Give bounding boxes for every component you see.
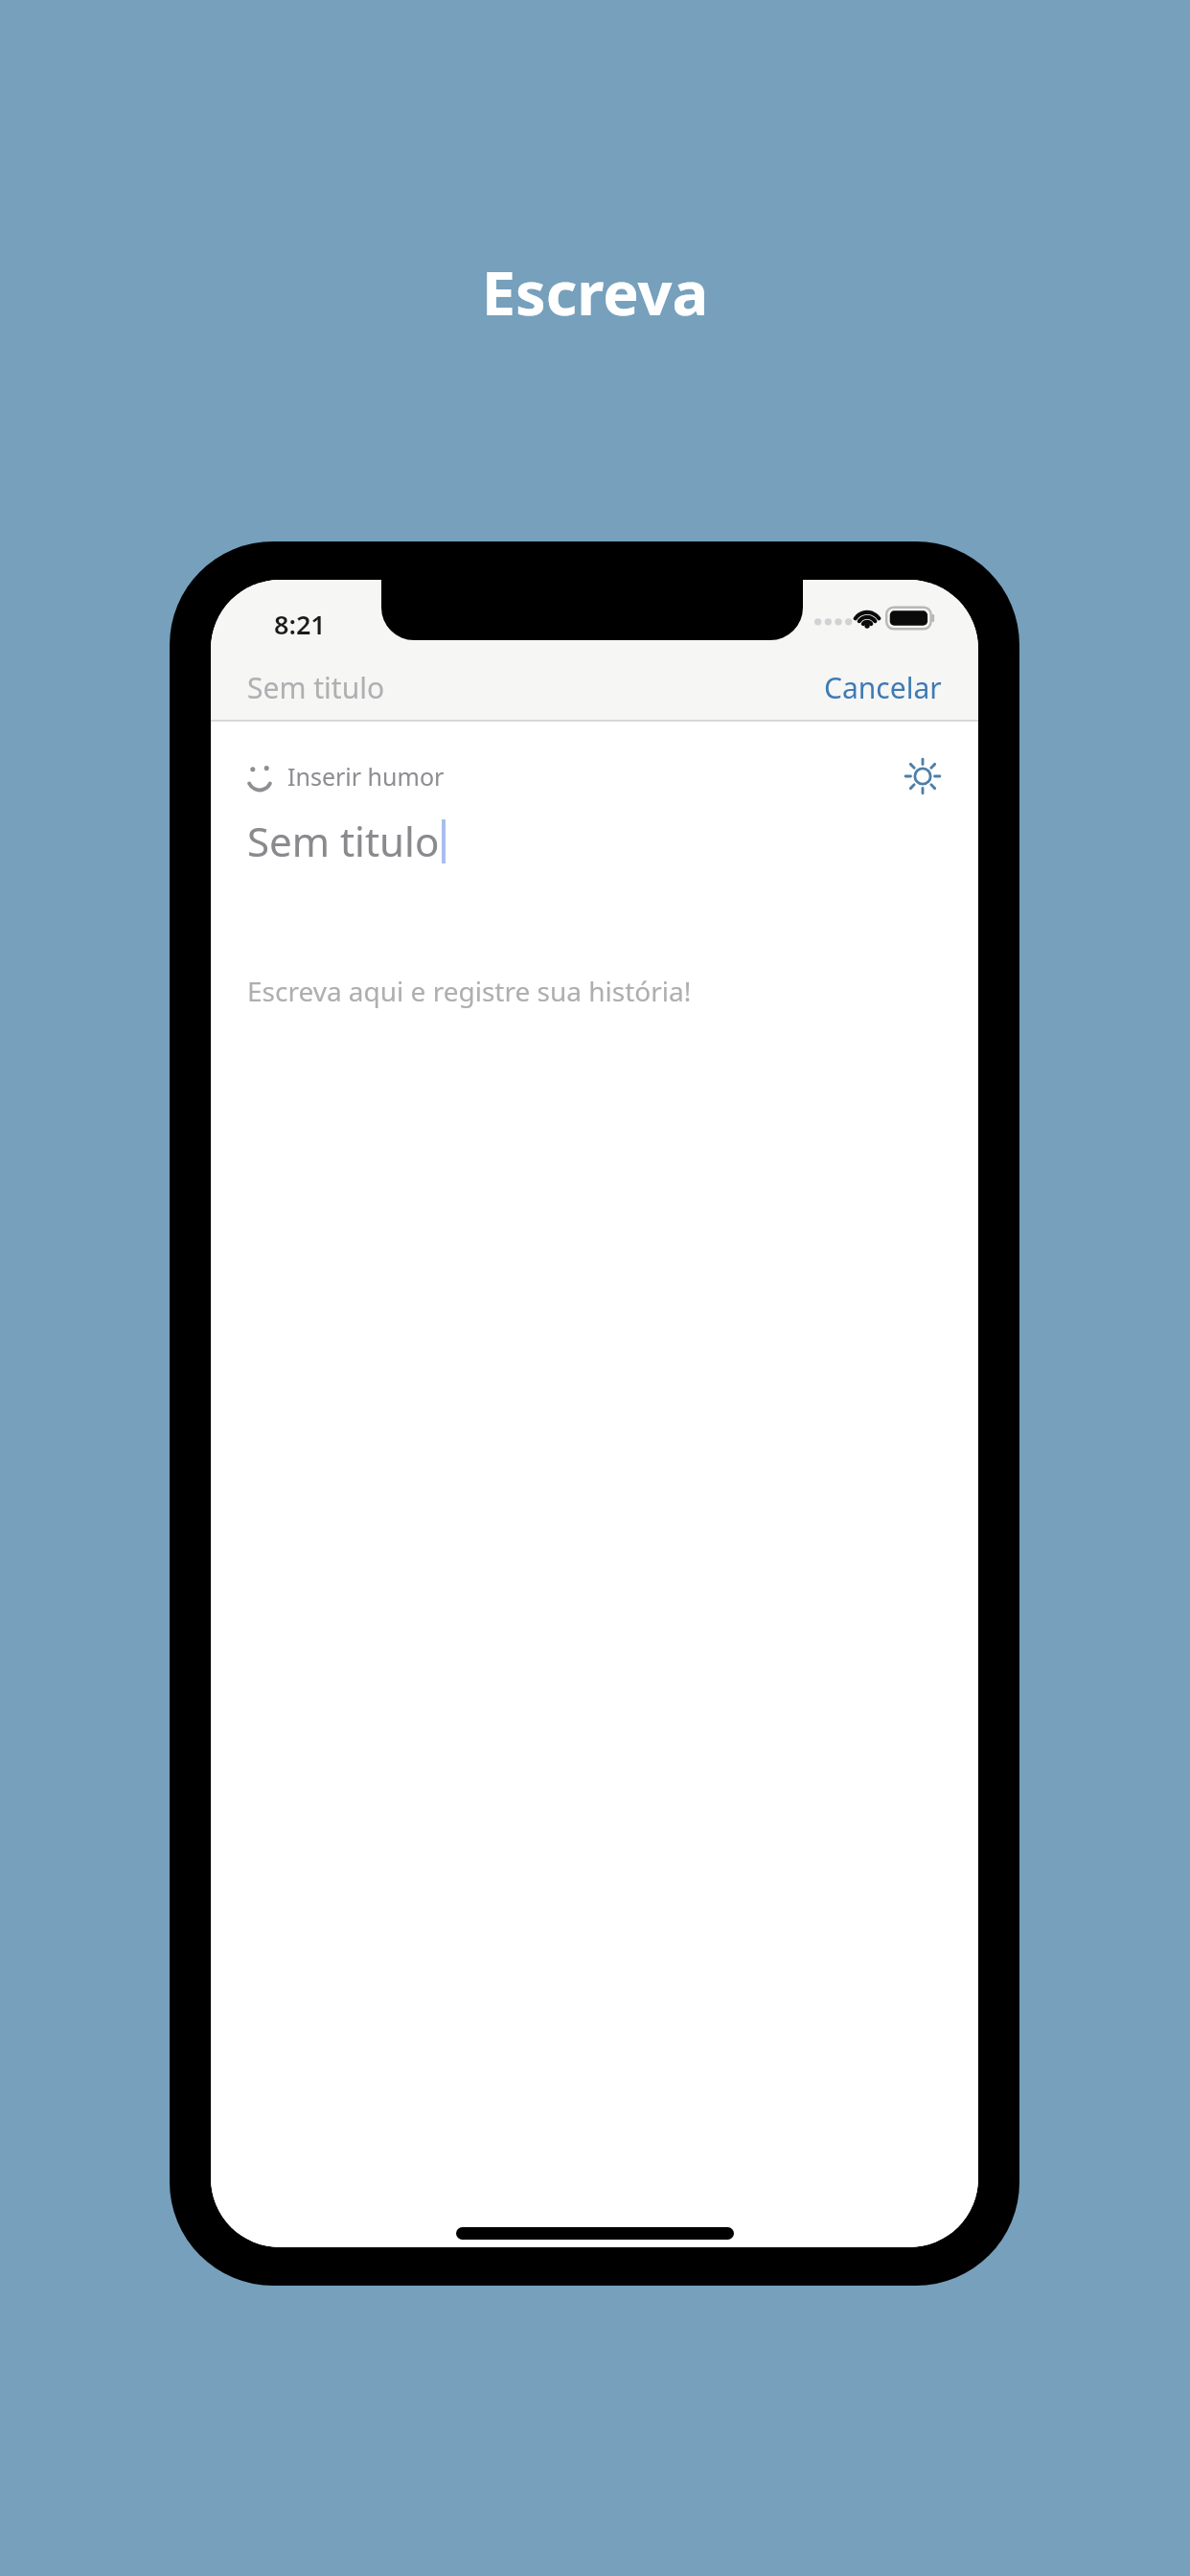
button[interactable]: Sem titulo [247, 814, 446, 868]
staticText: Inserir humor [287, 760, 445, 793]
button[interactable]: Inserir humor [245, 760, 445, 793]
button[interactable]: Cancelar [824, 668, 942, 707]
button[interactable]: Escreva aqui e registre sua história! [247, 973, 978, 1009]
staticText: Sem titulo [247, 814, 440, 868]
staticText: 8:21 [274, 607, 326, 642]
button[interactable]: Brightness [902, 755, 944, 797]
staticText: Escreva [0, 251, 1190, 333]
button[interactable]: Sem titulo [247, 668, 385, 707]
